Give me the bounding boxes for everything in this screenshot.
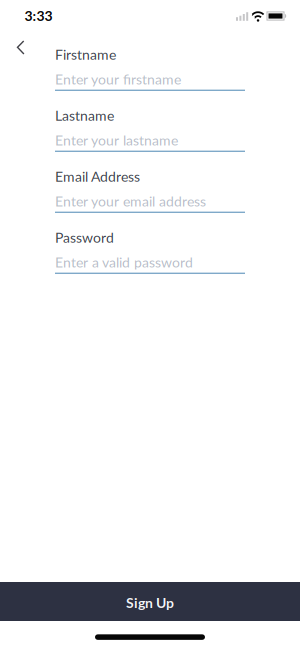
button[interactable]: Sign Up: [0, 582, 300, 621]
staticText: Sign Up: [126, 594, 174, 611]
button[interactable]: Lastname: [55, 124, 245, 152]
staticText: Enter your email address: [55, 193, 206, 210]
staticText: Firstname: [55, 46, 116, 63]
button[interactable]: Back: [9, 32, 32, 62]
staticText: Enter your lastname: [55, 132, 178, 149]
staticText: Lastname: [55, 107, 114, 124]
staticText: Enter a valid password: [55, 254, 193, 271]
staticText: Enter your firstname: [55, 71, 181, 88]
button[interactable]: Password: [55, 246, 245, 274]
button[interactable]: Email Address: [55, 185, 245, 213]
staticText: 3:33: [24, 7, 52, 24]
button[interactable]: Firstname: [55, 63, 245, 91]
staticText: Email Address: [55, 168, 140, 185]
staticText: Password: [55, 229, 114, 246]
